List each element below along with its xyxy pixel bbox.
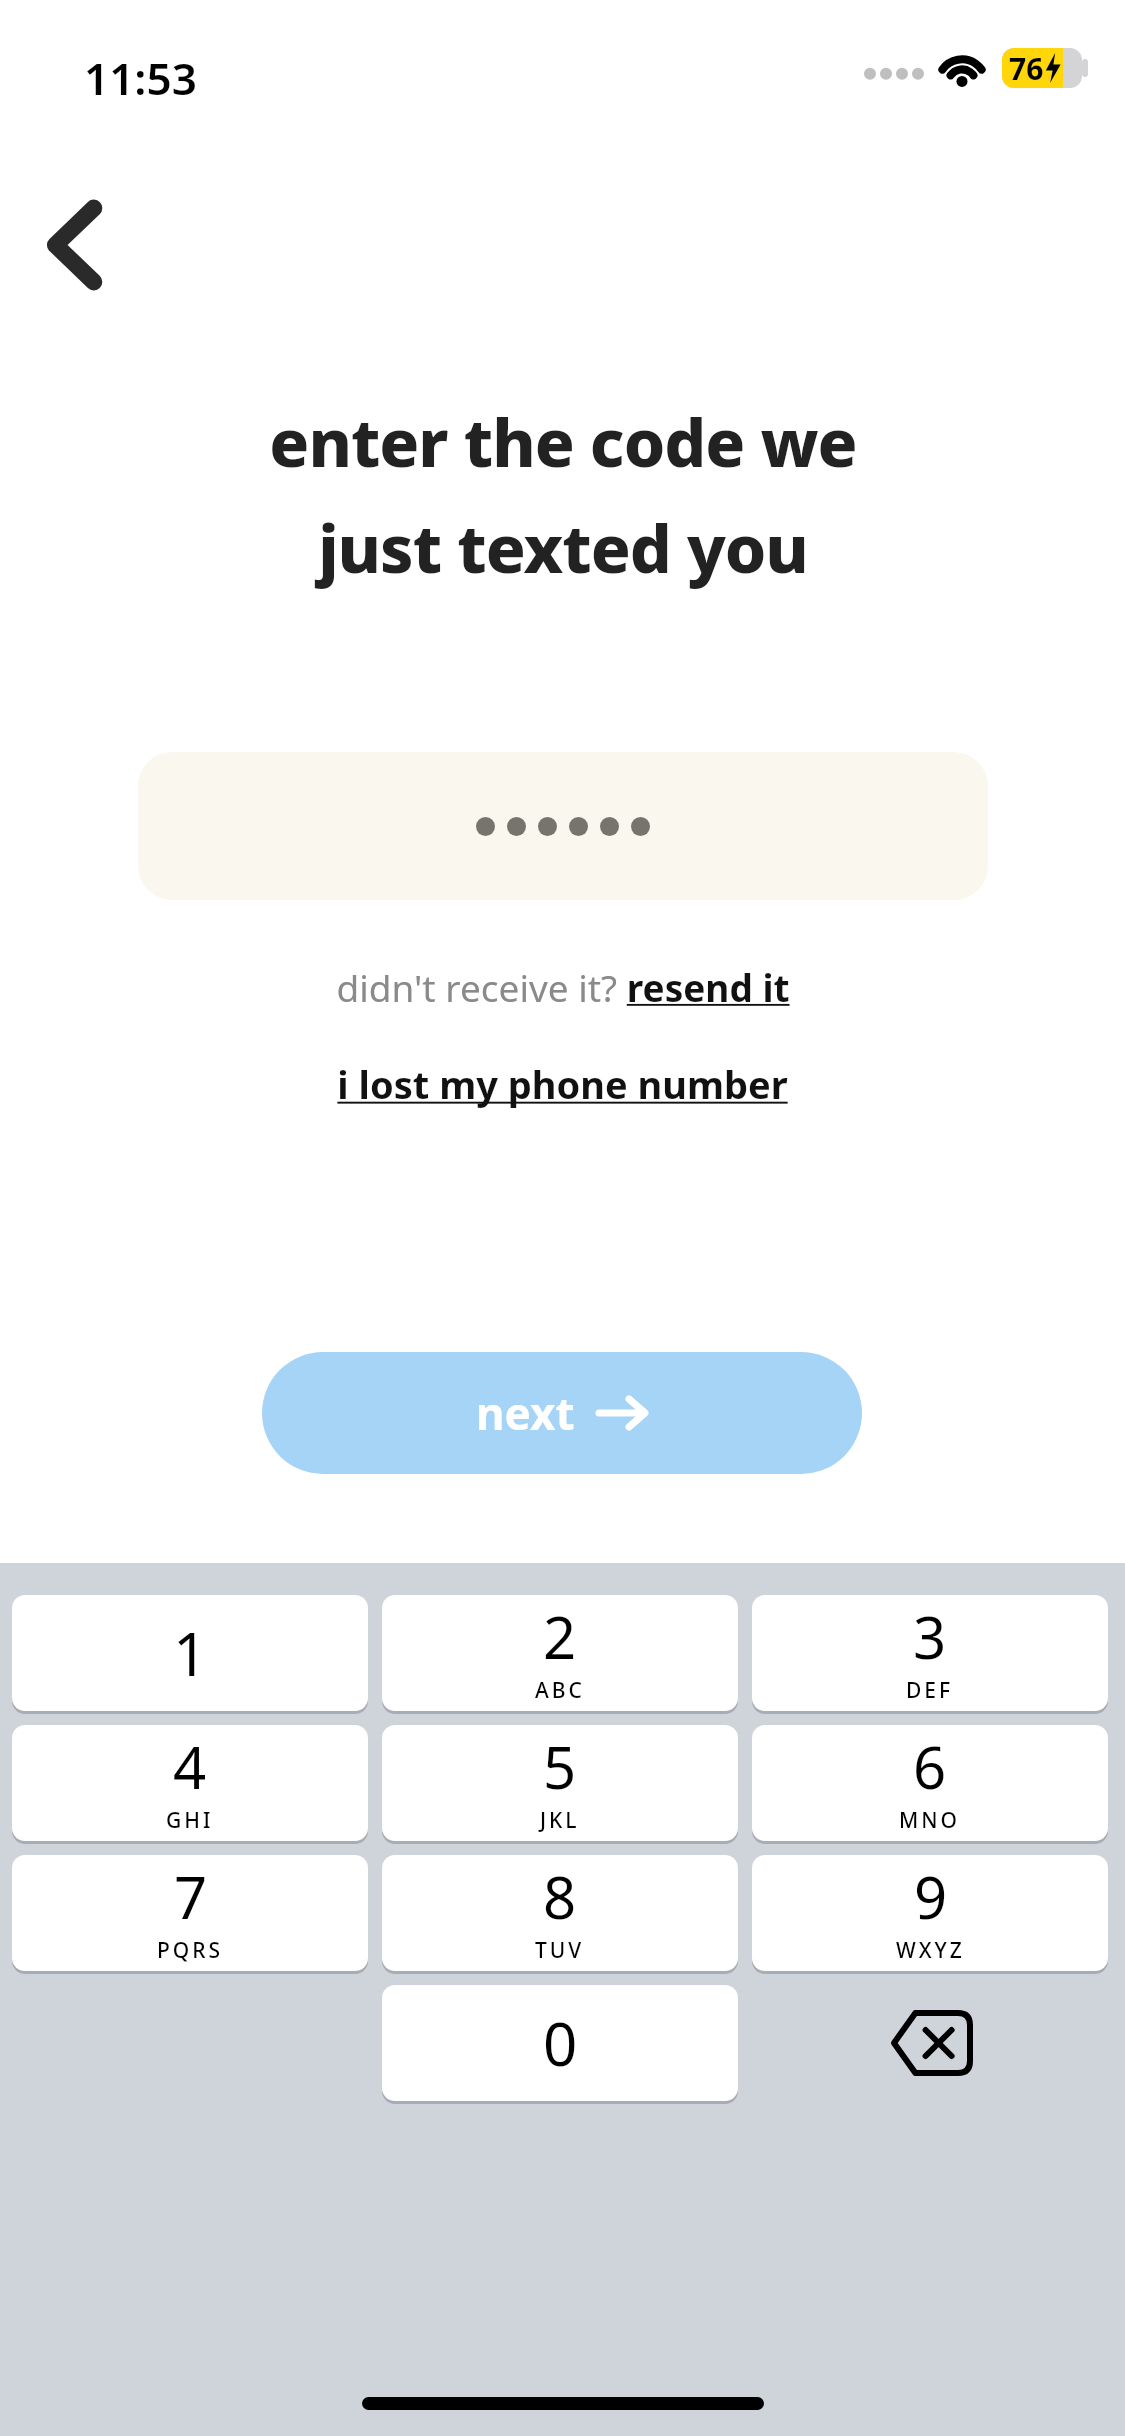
staticText: GHI bbox=[166, 1806, 214, 1835]
staticText: DEF bbox=[906, 1676, 954, 1705]
staticText: didn't receive it? resend it bbox=[336, 962, 790, 1012]
staticText: JKL bbox=[540, 1806, 580, 1835]
button[interactable]: next bbox=[262, 1352, 862, 1474]
staticText: PQRS bbox=[157, 1936, 224, 1965]
staticText: 0 bbox=[543, 2002, 578, 2084]
staticText: 5 bbox=[543, 1727, 577, 1806]
staticText: enter the code we bbox=[269, 396, 857, 486]
button[interactable]: 8 bbox=[382, 1855, 738, 1971]
button[interactable]: 3 bbox=[752, 1595, 1108, 1711]
button[interactable]: 2 bbox=[382, 1595, 738, 1711]
staticText: 3 bbox=[913, 1597, 947, 1676]
staticText: 2 bbox=[543, 1597, 577, 1676]
staticText: WXYZ bbox=[896, 1936, 965, 1965]
staticText: MNO bbox=[899, 1806, 961, 1835]
button[interactable]: 9 bbox=[752, 1855, 1108, 1971]
button[interactable]: Back bbox=[22, 190, 132, 300]
staticText: 7 bbox=[174, 1857, 208, 1936]
button[interactable]: 7 bbox=[12, 1855, 368, 1971]
staticText: 9 bbox=[914, 1857, 948, 1936]
staticText: 1 bbox=[173, 1612, 208, 1694]
button[interactable]: 4 bbox=[12, 1725, 368, 1841]
staticText: 11:53 bbox=[84, 48, 197, 108]
button[interactable]: didn't receive it? resend it bbox=[336, 962, 790, 1012]
button[interactable]: Backspace bbox=[752, 1985, 1108, 2101]
staticText: just texted you bbox=[318, 502, 808, 592]
staticText: ABC bbox=[535, 1676, 585, 1705]
button[interactable]: 5 bbox=[382, 1725, 738, 1841]
button[interactable]: 1 bbox=[12, 1595, 368, 1711]
button[interactable]: 6 bbox=[752, 1725, 1108, 1841]
staticText: 6 bbox=[913, 1727, 947, 1806]
staticText: 76 bbox=[1009, 48, 1044, 88]
staticText: 4 bbox=[173, 1727, 207, 1806]
staticText: 8 bbox=[543, 1857, 577, 1936]
staticText: i lost my phone number bbox=[337, 1058, 788, 1110]
button[interactable]: i lost my phone number bbox=[337, 1058, 788, 1110]
staticText: next bbox=[476, 1383, 575, 1443]
staticText: TUV bbox=[535, 1936, 585, 1965]
button[interactable] bbox=[138, 752, 988, 900]
button[interactable]: 0 bbox=[382, 1985, 738, 2101]
